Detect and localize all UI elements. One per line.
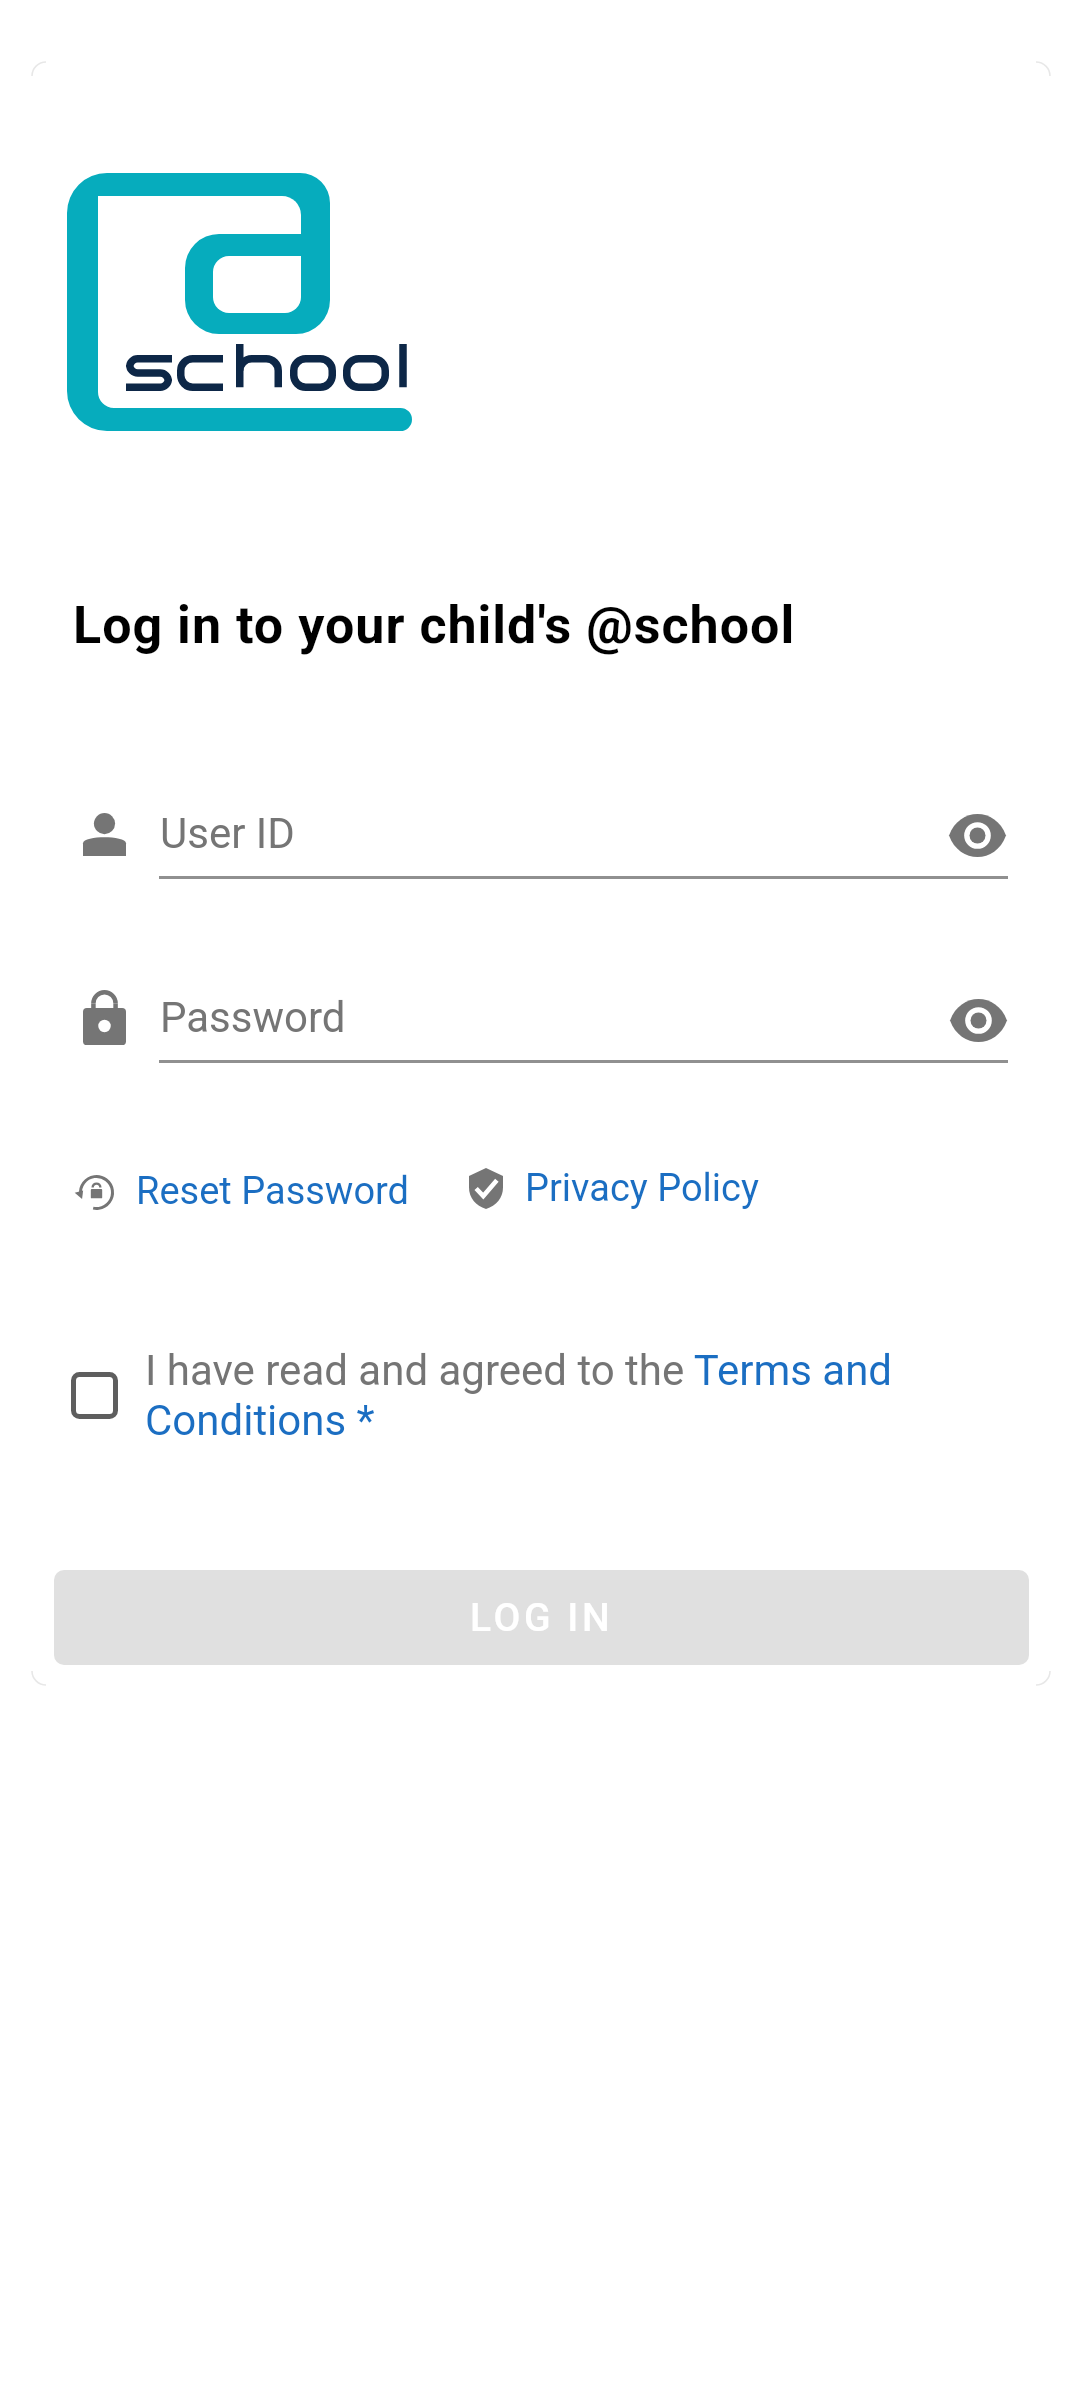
button[interactable]: Reset Password [66, 1163, 410, 1219]
button[interactable]: Show user id [937, 795, 1017, 875]
staticText: Log in to your child's @school [73, 595, 796, 656]
button[interactable]: Show password [938, 980, 1018, 1060]
staticText: Privacy Policy [525, 1166, 759, 1211]
button[interactable]: Accept terms and conditions [58, 1359, 131, 1432]
button[interactable]: LOG IN [54, 1570, 1029, 1665]
staticText: User ID [160, 809, 295, 858]
button[interactable]: I have read and agreed to the Terms and … [145, 1346, 910, 1445]
button[interactable]: Privacy Policy [469, 1160, 759, 1216]
button[interactable]: Password [66, 974, 956, 1072]
staticText: Password [160, 993, 346, 1042]
staticText: LOG IN [470, 1595, 614, 1641]
staticText: Reset Password [136, 1169, 410, 1214]
button[interactable]: User ID [66, 790, 956, 888]
